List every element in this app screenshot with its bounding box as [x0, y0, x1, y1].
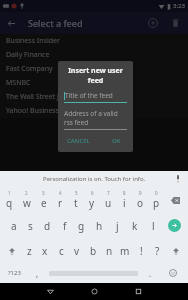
- button[interactable]: Recent apps: [116, 283, 160, 300]
- button[interactable]: c: [53, 239, 69, 262]
- button[interactable]: h: [90, 214, 108, 237]
- button[interactable]: Space: [46, 264, 141, 282]
- button[interactable]: Navigate up: [0, 12, 22, 34]
- button[interactable]: x: [37, 239, 53, 262]
- staticText: u: [105, 196, 112, 210]
- staticText: The Wall Street Journal: [6, 92, 81, 102]
- button[interactable]: z: [22, 239, 37, 262]
- button[interactable]: b: [85, 239, 101, 262]
- staticText: 6: [91, 190, 94, 196]
- staticText: v: [74, 244, 80, 258]
- button[interactable]: j: [108, 214, 126, 237]
- staticText: 3: [42, 190, 45, 196]
- staticText: Title of the feed: [65, 91, 113, 100]
- staticText: Personalization is on. Touch for info.: [43, 175, 146, 183]
- staticText: d: [44, 219, 51, 233]
- button[interactable]: v: [69, 239, 85, 262]
- staticText: 7: [107, 190, 110, 196]
- button[interactable]: .: [141, 264, 159, 282]
- button[interactable]: 9: [132, 189, 148, 212]
- button[interactable]: ?: [149, 239, 165, 262]
- button[interactable]: ,: [28, 264, 46, 282]
- staticText: ?123: [8, 269, 21, 277]
- staticText: c: [59, 244, 64, 258]
- staticText: t: [74, 196, 78, 210]
- button[interactable]: d: [39, 214, 56, 237]
- button[interactable]: Voice input: [173, 174, 183, 184]
- button[interactable]: 3: [35, 189, 52, 212]
- button[interactable]: Yahoo! Business News: [0, 104, 188, 118]
- staticText: !: [140, 244, 143, 258]
- staticText: Insert new user feed: [64, 66, 127, 86]
- button[interactable]: Go: [162, 214, 187, 237]
- button[interactable]: Personalization is on. Touch for info.: [0, 171, 188, 187]
- button[interactable]: MSNBC: [0, 76, 188, 90]
- staticText: 3:23: [173, 2, 185, 10]
- button[interactable]: 8: [116, 189, 132, 212]
- staticText: h: [96, 219, 103, 233]
- staticText: j: [116, 219, 119, 233]
- button[interactable]: m: [117, 239, 133, 262]
- staticText: b: [90, 244, 97, 258]
- staticText: g: [78, 219, 85, 233]
- staticText: ,: [36, 268, 39, 279]
- button[interactable]: [165, 239, 187, 262]
- button[interactable]: ?123: [1, 264, 28, 282]
- staticText: e: [41, 196, 47, 210]
- staticText: n: [106, 244, 113, 258]
- button[interactable]: Backspace: [164, 189, 187, 212]
- staticText: q: [6, 196, 13, 210]
- staticText: o: [137, 196, 144, 210]
- button[interactable]: Shift: [1, 239, 22, 262]
- button[interactable]: 2: [18, 189, 35, 212]
- button[interactable]: OK: [106, 135, 127, 147]
- staticText: 9: [139, 190, 142, 196]
- button[interactable]: n: [101, 239, 117, 262]
- staticText: a: [11, 219, 17, 233]
- button[interactable]: s: [22, 214, 39, 237]
- button[interactable]: f: [56, 214, 73, 237]
- staticText: y: [89, 196, 95, 210]
- button[interactable]: Fast Company: [0, 62, 188, 76]
- staticText: m: [120, 244, 130, 258]
- staticText: 0: [155, 190, 158, 196]
- button[interactable]: Back: [28, 283, 72, 300]
- staticText: Daily Finance: [6, 50, 50, 60]
- button[interactable]: g: [73, 214, 90, 237]
- button[interactable]: Home: [72, 283, 116, 300]
- button[interactable]: Add feed: [142, 12, 164, 34]
- staticText: Business Insider: [6, 36, 60, 46]
- button[interactable]: 7: [100, 189, 116, 212]
- staticText: OK: [112, 137, 121, 145]
- button[interactable]: Daily Finance: [0, 48, 188, 62]
- staticText: r: [58, 196, 63, 210]
- button[interactable]: !: [133, 239, 149, 262]
- staticText: 2: [25, 190, 28, 196]
- button[interactable]: 0: [148, 189, 164, 212]
- button[interactable]: CANCEL: [64, 135, 93, 147]
- staticText: 1: [8, 190, 11, 196]
- button[interactable]: The Wall Street Journal: [0, 90, 188, 104]
- button[interactable]: k: [126, 214, 144, 237]
- staticText: Address of a valid rss feed: [64, 109, 127, 127]
- staticText: 8: [123, 190, 126, 196]
- button[interactable]: l: [144, 214, 162, 237]
- other: Backspace: [164, 189, 187, 212]
- staticText: MSNBC: [6, 78, 31, 88]
- button[interactable]: a: [5, 214, 22, 237]
- staticText: 5: [75, 190, 78, 196]
- button[interactable]: 1: [1, 189, 18, 212]
- button[interactable]: Business Insider: [0, 34, 188, 48]
- button[interactable]: 6: [84, 189, 100, 212]
- other: Go: [162, 214, 187, 237]
- staticText: s: [28, 219, 33, 233]
- staticText: ?: [155, 244, 160, 258]
- staticText: CANCEL: [67, 137, 90, 145]
- staticText: z: [27, 244, 32, 258]
- staticText: l: [152, 219, 155, 233]
- staticText: x: [42, 244, 48, 258]
- button[interactable]: 4: [52, 189, 68, 212]
- button[interactable]: Emoji: [159, 264, 187, 282]
- button[interactable]: 5: [68, 189, 84, 212]
- button[interactable]: Delete: [164, 12, 186, 34]
